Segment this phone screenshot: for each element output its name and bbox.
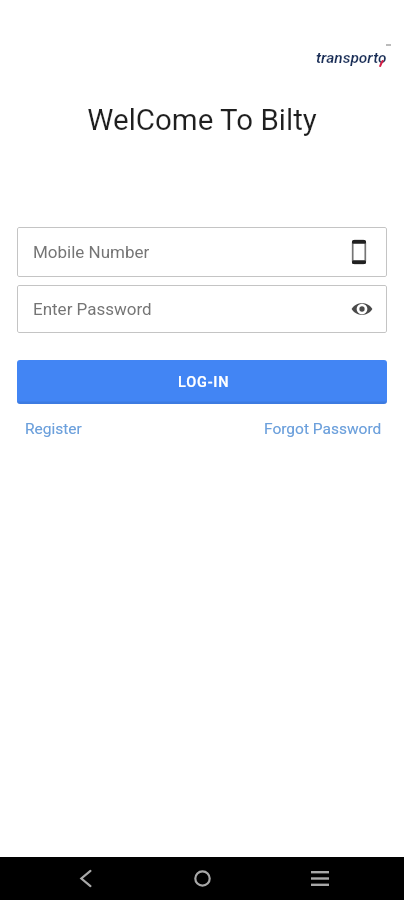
button[interactable]: LOG-IN [17,360,387,404]
staticText: LOG-IN [178,374,230,391]
button[interactable]: Home [144,857,261,900]
button[interactable]: Register [25,417,82,441]
staticText: Enter Password [33,299,351,319]
button[interactable]: Mobile Number [17,227,387,277]
staticText: transporto [316,49,387,67]
staticText: Mobile Number [33,242,352,262]
button[interactable]: Back [26,857,144,900]
staticText: WelCome To Bilty [0,103,404,138]
button[interactable]: Forgot Password [264,417,382,441]
button[interactable]: Enter Password [17,285,387,333]
button[interactable]: Recent apps [261,857,378,900]
